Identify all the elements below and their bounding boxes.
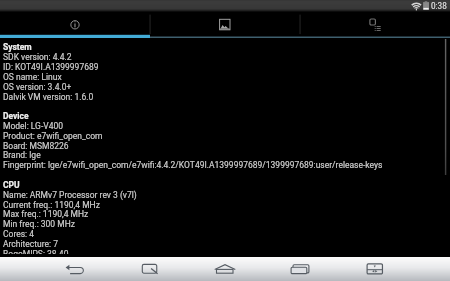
staticText: Brand: lge [3,150,41,160]
staticText: Dalvik VM version: 1.6.0 [3,92,94,102]
staticText: Max freq.: 1190,4 MHz [3,209,89,219]
staticText: Product: e7wifi_open_com [3,131,103,141]
button[interactable]: Sensors tab [300,12,450,38]
button[interactable]: Screen capture [120,257,180,281]
staticText: Name: ARMv7 Processor rev 3 (v7l) [3,190,137,200]
staticText: ID: KOT49I.A1399997689 [3,62,99,72]
staticText: Cores: 4 [3,229,35,239]
staticText: Device [3,111,29,121]
staticText: System [3,42,32,52]
staticText: OS name: Linux [3,72,62,82]
staticText: BogoMIPS: 38.40 [3,249,69,254]
staticText: 0:38 [431,1,447,11]
staticText: Board: MSM8226 [3,141,69,151]
button[interactable]: Screen tab [150,12,300,38]
staticText: OS version: 3.4.0+ [3,82,72,92]
staticText: Model: LG-V400 [3,121,63,131]
staticText: Architecture: 7 [3,239,59,249]
button[interactable]: Multi window [345,257,405,281]
staticText: Current freq.: 1190,4 MHz [3,200,100,210]
staticText: SDK version: 4.4.2 [3,52,72,62]
button[interactable]: Recent apps [270,257,330,281]
staticText: Fingerprint: lge/e7wifi_open_com/e7wifi:… [3,160,383,170]
button[interactable]: Back [45,257,105,281]
button[interactable]: Home [195,257,255,281]
staticText: CPU [3,180,20,190]
staticText: Min freq.: 300 MHz [3,219,75,229]
button[interactable]: System information tab [0,12,150,38]
